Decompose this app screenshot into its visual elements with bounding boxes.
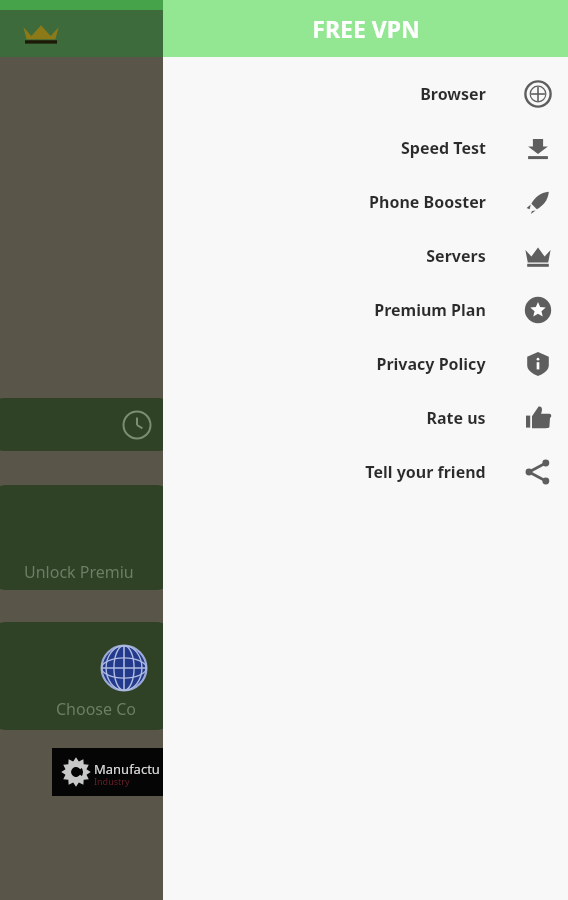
button[interactable]: Manufactu [52, 748, 170, 796]
staticText: Phone Booster [369, 191, 486, 213]
staticText: Tell your friend [365, 461, 486, 483]
button[interactable]: Unlock Premiu [0, 485, 174, 590]
staticText: Unlock Premiu [24, 561, 134, 583]
button[interactable]: Phone Booster [163, 175, 568, 229]
button[interactable] [0, 398, 174, 451]
button[interactable]: Privacy Policy [163, 337, 568, 391]
staticText: Manufactu [94, 760, 160, 778]
staticText: Speed Test [401, 137, 486, 159]
staticText: Premium Plan [374, 299, 486, 321]
button[interactable]: Premium Plan [163, 283, 568, 337]
button[interactable]: Tell your friend [163, 445, 568, 499]
button[interactable]: Rate us [163, 391, 568, 445]
staticText: FREE VPN [312, 13, 420, 44]
staticText: Industry [94, 775, 130, 787]
button[interactable]: Choose Co [0, 622, 174, 730]
staticText: Servers [426, 245, 486, 267]
staticText: Rate us [426, 407, 486, 429]
button[interactable]: Speed Test [163, 121, 568, 175]
staticText: Browser [420, 83, 486, 105]
button[interactable]: Premium [18, 17, 64, 51]
staticText: Privacy Policy [376, 353, 486, 375]
button[interactable]: Servers [163, 229, 568, 283]
staticText: Choose Co [56, 698, 137, 720]
button[interactable]: Browser [163, 67, 568, 121]
